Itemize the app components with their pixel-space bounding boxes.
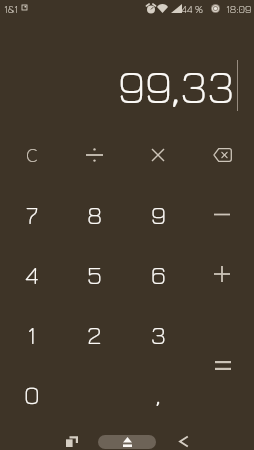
staticText: 9 [151, 199, 166, 230]
button[interactable]: Home [98, 435, 156, 449]
button[interactable]: Plus [190, 244, 254, 304]
button[interactable]: Divide [63, 125, 126, 184]
button[interactable]: Minus [190, 184, 254, 244]
other: Minus [214, 213, 230, 216]
button[interactable]: 4 [0, 244, 63, 304]
button[interactable]: 7 [0, 184, 63, 244]
button[interactable]: Recents [56, 424, 88, 450]
staticText: 8 [87, 199, 103, 230]
staticText: 6 [151, 259, 166, 290]
button[interactable]: Multiply [126, 125, 190, 184]
staticText: 44 % [181, 2, 203, 15]
other: Plus [214, 266, 230, 282]
other: Divide [86, 148, 103, 162]
staticText: 0 [24, 379, 40, 410]
button[interactable] [190, 364, 254, 424]
button[interactable]: , [126, 364, 190, 424]
other: Multiply [152, 149, 164, 161]
button[interactable]: 1 [0, 304, 63, 364]
staticText: 2 [87, 319, 102, 350]
staticText: 7 [26, 199, 38, 230]
button[interactable]: 0 [0, 364, 63, 424]
button[interactable]: 3 [126, 304, 190, 364]
button[interactable] [190, 304, 254, 364]
button[interactable]: Backspace [190, 125, 254, 184]
staticText: C [26, 145, 38, 165]
staticText: 5 [87, 259, 102, 290]
button[interactable]: Equals [191, 305, 254, 425]
button[interactable]: 5 [63, 244, 126, 304]
button[interactable]: 9 [126, 184, 190, 244]
staticText: 1&1 [4, 2, 19, 15]
staticText: , [156, 379, 161, 410]
button[interactable]: C [0, 125, 63, 184]
staticText: 1 [27, 319, 36, 350]
other: Backspace [213, 148, 232, 162]
staticText: 4 [25, 259, 39, 290]
staticText: 3 [151, 319, 166, 350]
button[interactable]: 8 [63, 184, 126, 244]
button[interactable]: Back [166, 424, 198, 450]
staticText: 99,33 [118, 58, 235, 114]
other: Equals [215, 361, 231, 370]
button[interactable]: 6 [126, 244, 190, 304]
staticText: 18:09 [226, 2, 252, 15]
button[interactable]: 2 [63, 304, 126, 364]
